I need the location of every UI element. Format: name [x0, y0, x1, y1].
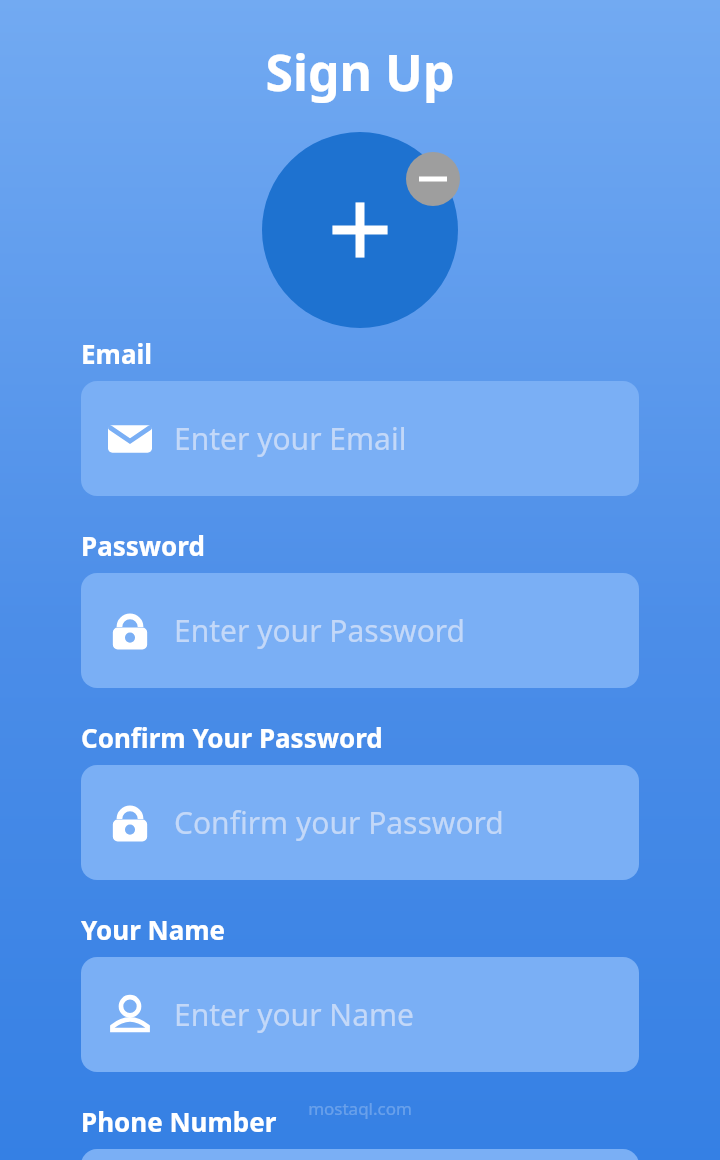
- staticText: Confirm Your Password: [81, 720, 383, 755]
- button[interactable]: Confirm your Password: [81, 765, 639, 880]
- staticText: Enter your Name: [174, 994, 414, 1035]
- button[interactable]: Enter your Email: [81, 381, 639, 496]
- button[interactable]: Enter your Phone: [81, 1149, 639, 1160]
- staticText: mostaql.com: [308, 1097, 412, 1120]
- staticText: Confirm your Password: [174, 802, 504, 843]
- staticText: Phone Number: [81, 1104, 277, 1139]
- staticText: Enter your Password: [174, 610, 466, 651]
- button[interactable]: Enter your Name: [81, 957, 639, 1072]
- staticText: Email: [81, 336, 153, 371]
- button[interactable]: Remove photo: [406, 152, 460, 206]
- staticText: Your Name: [81, 912, 226, 947]
- button[interactable]: Enter your Password: [81, 573, 639, 688]
- button[interactable]: Add profile photo: [262, 132, 458, 328]
- staticText: Enter your Email: [174, 418, 407, 459]
- staticText: Password: [81, 528, 205, 563]
- staticText: Sign Up: [0, 38, 720, 106]
